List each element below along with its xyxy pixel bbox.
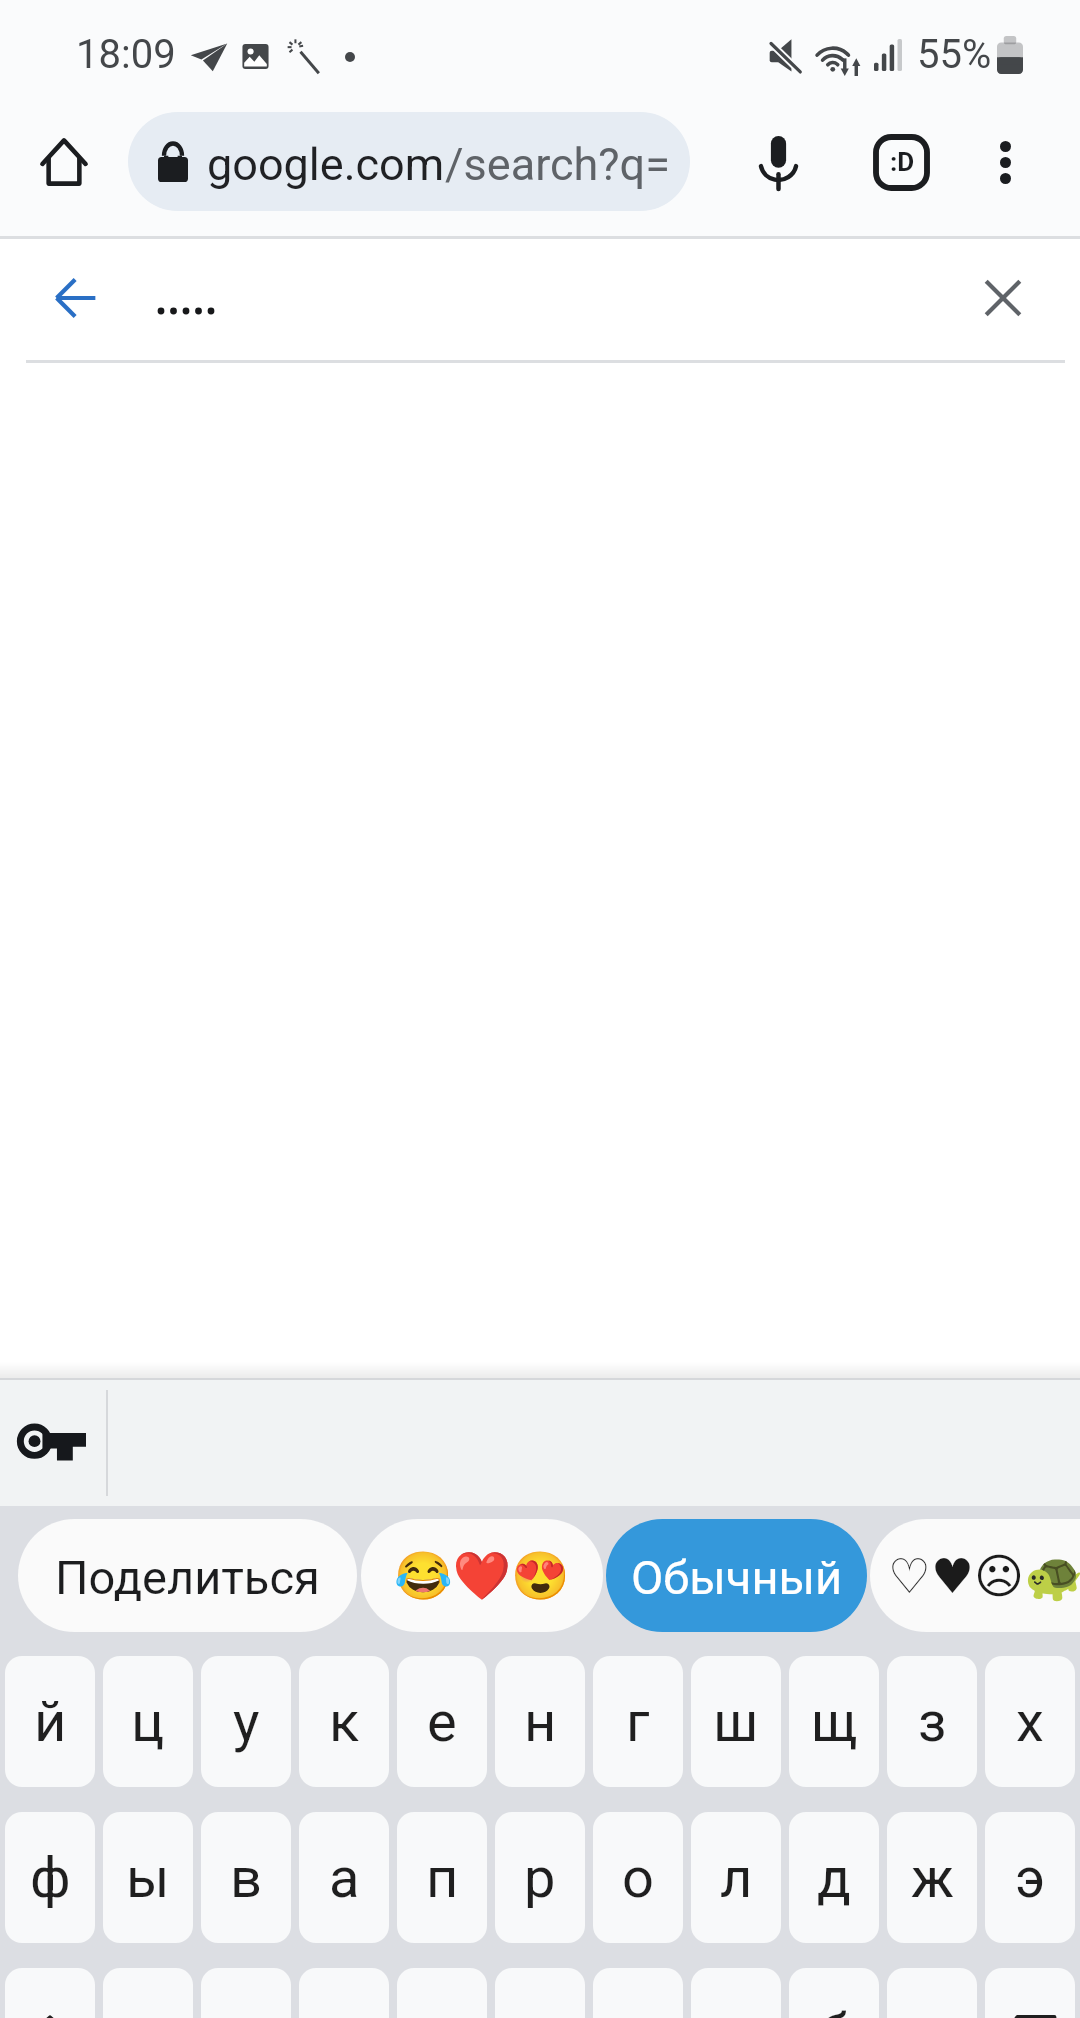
staticText: щ [811,1689,858,1755]
button[interactable]: Обычный [606,1519,867,1632]
staticText: ж [911,1845,954,1911]
button[interactable]: и [495,1968,585,2018]
button[interactable]: н [495,1656,585,1787]
button[interactable]: х [985,1656,1075,1787]
button[interactable]: Close find bar [972,267,1034,329]
staticText: 18:09 [76,31,176,78]
button[interactable]: г [593,1656,683,1787]
staticText: х [1016,1689,1044,1755]
staticText: а [329,1845,360,1911]
staticText: е [427,1689,457,1755]
button[interactable]: Passwords [0,1380,106,1506]
button[interactable]: ы [103,1812,193,1943]
button[interactable]: Back [31,253,121,343]
staticText: google.com [207,138,445,191]
button[interactable]: т [593,1968,683,2018]
button[interactable]: б [789,1968,879,2018]
button[interactable]: ю [887,1968,977,2018]
staticText: 55% [917,31,992,78]
button[interactable]: я [103,1968,193,2018]
button[interactable]: к [299,1656,389,1787]
button[interactable]: Tabs [851,112,951,212]
button[interactable]: google.com [128,112,690,211]
staticText: д [817,1845,851,1911]
button[interactable]: й [5,1656,95,1787]
staticText: ш [713,1689,759,1755]
button[interactable]: ♡♥☹︎🐢︎✂︎ [870,1519,1080,1632]
staticText: ф [30,1845,71,1911]
button[interactable]: р [495,1812,585,1943]
staticText: л [720,1845,753,1911]
button[interactable]: м [397,1968,487,2018]
button[interactable] [985,1968,1075,2018]
staticText: Обычный [631,1550,843,1605]
button[interactable]: 😂❤️😍 [361,1519,603,1632]
staticText: п [426,1845,459,1911]
button[interactable]: с [299,1968,389,2018]
staticText: з [918,1689,947,1755]
button[interactable]: ц [103,1656,193,1787]
button[interactable]: э [985,1812,1075,1943]
button[interactable]: в [201,1812,291,1943]
button[interactable] [5,1968,95,2018]
button[interactable]: ш [691,1656,781,1787]
button[interactable]: ь [691,1968,781,2018]
button[interactable]: ф [5,1812,95,1943]
button[interactable]: у [201,1656,291,1787]
button[interactable]: л [691,1812,781,1943]
staticText: ♡♥☹︎🐢︎✂︎ [888,1548,1080,1604]
staticText: ц [131,1689,165,1755]
staticText: Поделиться [55,1550,320,1605]
button[interactable]: е [397,1656,487,1787]
button[interactable]: Voice search [728,112,828,212]
staticText: к [329,1689,360,1755]
staticText: й [34,1689,67,1755]
button[interactable]: ж [887,1812,977,1943]
staticText: в [230,1845,263,1911]
button[interactable]: ч [201,1968,291,2018]
staticText: у [233,1689,260,1755]
staticText: р [524,1845,556,1911]
staticText: о [622,1845,654,1911]
staticText: ы [126,1845,170,1911]
staticText: :D [890,147,915,177]
button[interactable]: More options [955,112,1055,212]
button[interactable]: д [789,1812,879,1943]
staticText: г [626,1689,650,1755]
staticText: э [1015,1845,1046,1911]
staticText: б [819,2001,850,2018]
staticText: /search?q= [445,138,670,191]
button[interactable]: а [299,1812,389,1943]
staticText: 😂❤️😍 [394,1548,570,1603]
button[interactable]: щ [789,1656,879,1787]
staticText: н [524,1689,557,1755]
button[interactable]: Home [20,118,108,206]
button[interactable]: Поделиться [18,1519,357,1632]
button[interactable]: п [397,1812,487,1943]
button[interactable]: о [593,1812,683,1943]
button[interactable]: з [887,1656,977,1787]
